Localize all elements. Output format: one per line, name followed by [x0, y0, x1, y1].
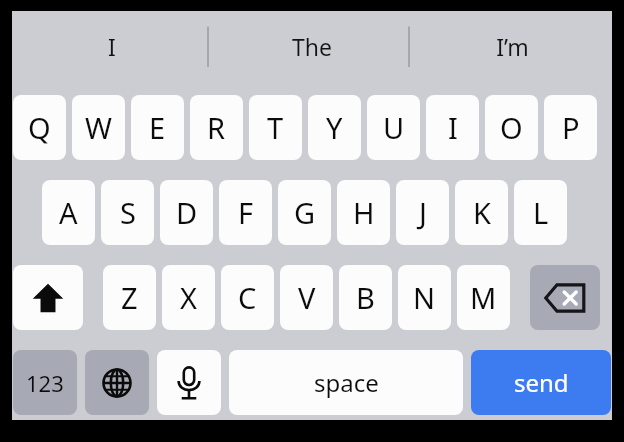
staticText: M [470, 278, 497, 317]
staticText: F [238, 193, 254, 232]
button[interactable]: space [229, 350, 463, 415]
staticText: send [514, 366, 569, 399]
button[interactable]: R [190, 95, 243, 160]
staticText: D [176, 193, 198, 232]
button[interactable]: C [221, 265, 274, 330]
button[interactable]: J [396, 180, 449, 245]
staticText: space [314, 366, 379, 399]
staticText: L [533, 193, 549, 232]
button[interactable]: K [455, 180, 508, 245]
staticText: S [120, 193, 136, 232]
button[interactable]: D [160, 180, 213, 245]
button[interactable]: T [249, 95, 302, 160]
staticText: X [180, 278, 197, 317]
staticText: W [85, 108, 112, 147]
staticText: 123 [26, 368, 64, 398]
staticText: B [356, 278, 375, 317]
button[interactable]: V [280, 265, 333, 330]
button[interactable]: Z [103, 265, 156, 330]
button[interactable]: Q [13, 95, 66, 160]
button[interactable]: E [131, 95, 184, 160]
staticText: Q [28, 108, 51, 147]
staticText: E [149, 108, 166, 147]
staticText: N [413, 278, 436, 317]
button[interactable]: G [278, 180, 331, 245]
button[interactable]: P [544, 95, 597, 160]
button[interactable]: Y [308, 95, 361, 160]
staticText: Y [326, 108, 343, 147]
button[interactable]: X [162, 265, 215, 330]
button[interactable]: I’m [412, 11, 612, 81]
staticText: V [298, 278, 316, 317]
staticText: K [473, 193, 491, 232]
button[interactable]: Shift [13, 265, 83, 330]
staticText: I [448, 108, 458, 147]
button[interactable]: B [339, 265, 392, 330]
staticText: U [383, 108, 405, 147]
button[interactable]: I [12, 11, 212, 81]
button[interactable]: M [457, 265, 510, 330]
staticText: T [267, 108, 284, 147]
button[interactable]: 123 [13, 350, 77, 415]
staticText: I [108, 31, 116, 62]
staticText: J [419, 193, 427, 232]
button[interactable]: N [398, 265, 451, 330]
button[interactable]: U [367, 95, 420, 160]
staticText: H [353, 193, 375, 232]
button[interactable]: Voice input [157, 350, 221, 415]
staticText: O [500, 108, 523, 147]
button[interactable]: Change keyboard [85, 350, 149, 415]
button[interactable]: L [514, 180, 567, 245]
button[interactable]: Backspace [530, 265, 600, 330]
staticText: P [562, 108, 580, 147]
staticText: G [294, 193, 316, 232]
button[interactable]: S [101, 180, 154, 245]
staticText: I’m [496, 31, 529, 62]
staticText: R [207, 108, 226, 147]
button[interactable]: The [212, 11, 412, 81]
button[interactable]: W [72, 95, 125, 160]
button[interactable]: send [471, 350, 611, 415]
button[interactable]: I [426, 95, 479, 160]
staticText: A [59, 193, 78, 232]
button[interactable]: H [337, 180, 390, 245]
staticText: The [292, 31, 332, 62]
button[interactable]: O [485, 95, 538, 160]
staticText: Z [121, 278, 138, 317]
button[interactable]: F [219, 180, 272, 245]
button[interactable]: A [42, 180, 95, 245]
staticText: C [238, 278, 257, 317]
